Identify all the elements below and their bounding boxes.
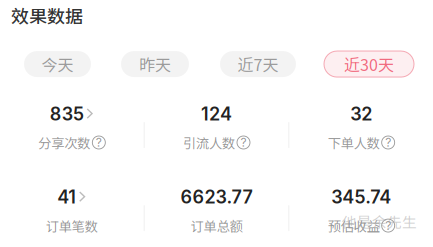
- staticText: 昨天: [139, 52, 171, 76]
- button[interactable]: 6623.77: [145, 186, 288, 235]
- button[interactable]: 835: [0, 103, 144, 152]
- staticText: 835: [50, 103, 84, 125]
- staticText: 订单笔数: [46, 216, 98, 235]
- staticText: 124: [201, 103, 232, 125]
- staticText: 近30天: [344, 52, 394, 76]
- staticText: 预估收益: [328, 216, 380, 235]
- staticText: 他是余先生: [342, 211, 417, 232]
- staticText: 分享次数: [38, 133, 90, 152]
- staticText: 近7天: [237, 52, 278, 76]
- button[interactable]: 昨天: [121, 51, 189, 77]
- staticText: 订单总额: [190, 216, 242, 235]
- button[interactable]: 345.74: [289, 186, 433, 235]
- button[interactable]: 近7天: [220, 51, 296, 77]
- staticText: ?: [385, 135, 391, 150]
- button[interactable]: 41: [0, 186, 144, 235]
- staticText: 今天: [41, 52, 73, 76]
- staticText: 6623.77: [180, 186, 252, 208]
- staticText: 效果数据: [11, 2, 83, 28]
- staticText: 引流人数: [183, 133, 235, 152]
- staticText: ?: [96, 135, 102, 150]
- staticText: 32: [350, 103, 372, 125]
- staticText: ?: [240, 135, 246, 150]
- staticText: ?: [385, 218, 391, 233]
- button[interactable]: 32: [289, 103, 433, 152]
- staticText: 下单人数: [328, 133, 380, 152]
- button[interactable]: 近30天: [324, 51, 414, 77]
- staticText: 41: [57, 186, 76, 208]
- staticText: 345.74: [331, 186, 391, 208]
- button[interactable]: 124: [145, 103, 288, 152]
- button[interactable]: 今天: [24, 51, 91, 77]
